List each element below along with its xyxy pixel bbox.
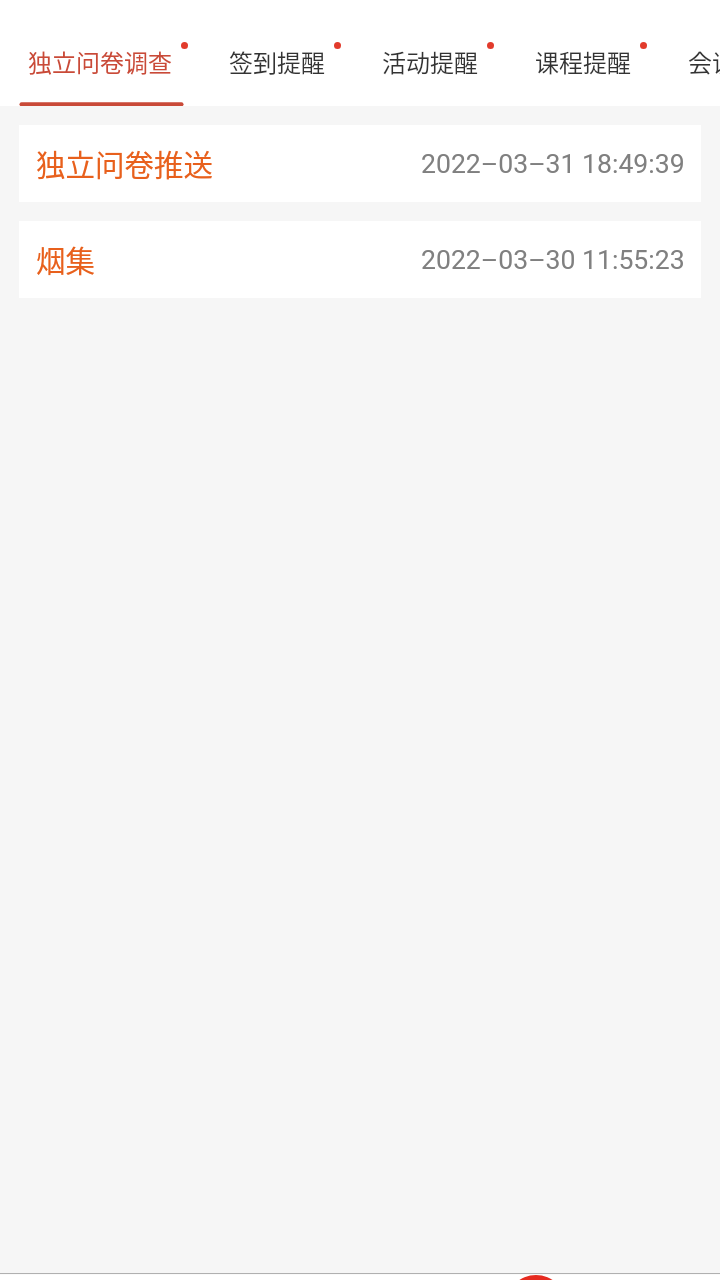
- button[interactable]: 课程提醒: [507, 0, 660, 106]
- staticText: 课程提醒: [535, 44, 631, 79]
- button[interactable]: 会议提醒: [660, 0, 720, 106]
- staticText: 签到提醒: [229, 44, 325, 79]
- button[interactable]: 活动提醒: [354, 0, 507, 106]
- staticText: 会议提醒: [688, 44, 720, 79]
- button[interactable]: 独立问卷调查: [0, 0, 201, 106]
- staticText: 2022–03–31 18:49:39: [421, 148, 685, 179]
- button[interactable]: Add: [506, 1275, 566, 1280]
- button[interactable]: 签到提醒: [201, 0, 354, 106]
- staticText: 独立问卷调查: [28, 44, 172, 79]
- staticText: 2022–03–30 11:55:23: [421, 244, 685, 275]
- button[interactable]: 独立问卷推送: [19, 125, 701, 202]
- staticText: 独立问卷推送: [36, 142, 214, 185]
- button[interactable]: 烟集: [19, 221, 701, 298]
- staticText: 活动提醒: [382, 44, 478, 79]
- staticText: 烟集: [36, 238, 96, 281]
